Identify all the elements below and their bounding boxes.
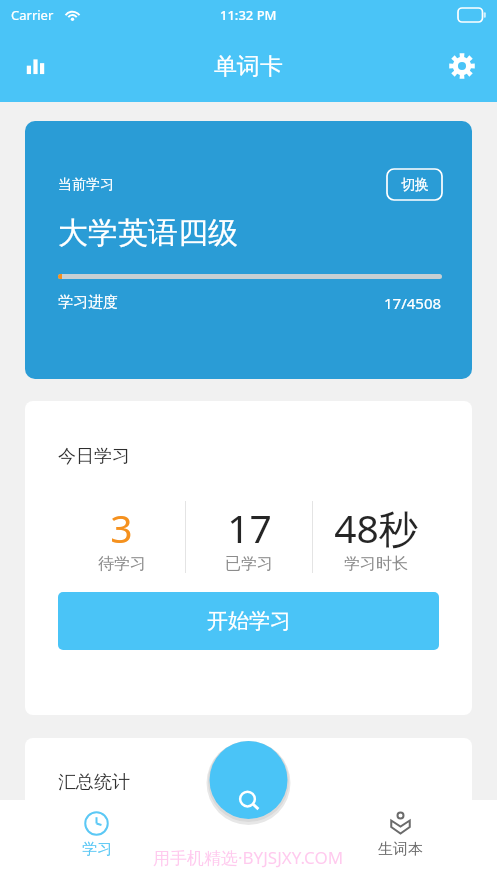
staticText: 当前学习: [58, 176, 114, 194]
button[interactable]: 学习: [0, 800, 193, 883]
staticText: 今日学习: [58, 445, 130, 468]
staticText: 待学习: [98, 554, 146, 574]
staticText: 17: [227, 501, 272, 554]
staticText: 3: [110, 501, 133, 554]
button[interactable]: Statistics: [8, 39, 62, 93]
staticText: 切换: [401, 176, 429, 194]
staticText: 学习: [82, 840, 112, 859]
button[interactable]: Search: [210, 783, 288, 820]
staticText: 48秒: [334, 501, 418, 554]
staticText: 开始学习: [207, 608, 291, 634]
staticText: Carrier: [11, 6, 54, 24]
staticText: 已学习: [225, 554, 273, 574]
staticText: 生词本: [378, 840, 423, 859]
staticText: 学习时长: [344, 554, 408, 574]
button[interactable]: 汇总统计: [25, 738, 472, 878]
staticText: 汇总统计: [58, 771, 130, 794]
staticText: 单词卡: [214, 52, 283, 81]
button[interactable]: Settings: [435, 39, 489, 93]
staticText: 学习进度: [58, 293, 118, 312]
button[interactable]: 开始学习: [58, 592, 439, 650]
staticText: 用手机精选·BYJSJXY.COM: [153, 846, 344, 869]
button[interactable]: 切换: [387, 169, 442, 200]
button[interactable]: 生词本: [303, 800, 497, 883]
staticText: 11:32 PM: [220, 6, 277, 24]
staticText: 17/4508: [384, 293, 442, 313]
button[interactable]: 当前学习: [25, 121, 472, 379]
staticText: 大学英语四级: [58, 214, 238, 252]
